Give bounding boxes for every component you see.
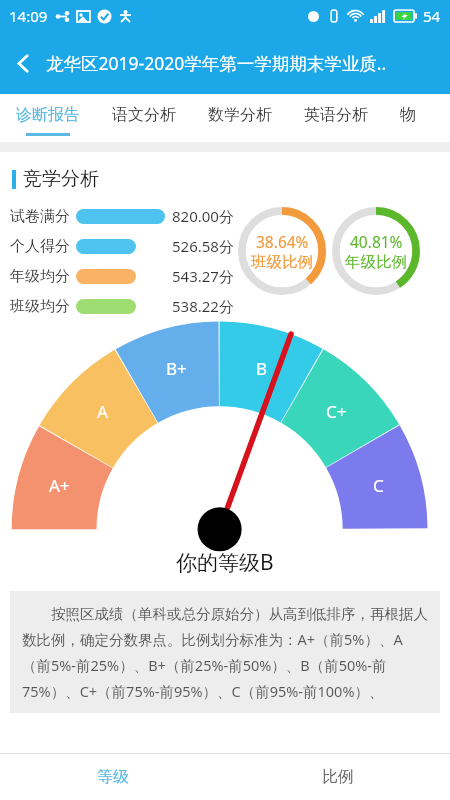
staticText: 英语分析 — [304, 105, 368, 125]
staticText: A — [97, 400, 108, 423]
staticText: 物 — [400, 105, 416, 125]
staticText: A+ — [49, 474, 70, 497]
staticText: 40.81% — [350, 231, 403, 252]
button[interactable]: 物 — [384, 94, 432, 142]
button[interactable]: 比例 — [225, 754, 450, 800]
staticText: 543.27分 — [172, 266, 234, 286]
staticText: 820.00分 — [172, 206, 234, 226]
button[interactable]: 等级 — [0, 754, 225, 800]
staticText: 竞学分析 — [23, 167, 99, 191]
staticText: C+ — [326, 400, 347, 423]
staticText: 按照区成绩（单科或总分原始分）从高到低排序，再根据人数比例，确定分数界点。比例划… — [22, 603, 428, 701]
staticText: 538.22分 — [172, 296, 234, 316]
button[interactable]: 英语分析 — [288, 94, 384, 142]
staticText: 试卷满分 — [10, 207, 70, 226]
staticText: 个人得分 — [10, 237, 70, 256]
staticText: 班级均分 — [10, 297, 70, 316]
staticText: 诊断报告 — [16, 105, 80, 125]
button[interactable]: Back — [0, 32, 46, 94]
button[interactable]: 诊断报告 — [0, 94, 96, 142]
staticText: 等级 — [97, 767, 129, 787]
staticText: 语文分析 — [112, 105, 176, 125]
staticText: 38.64% — [256, 231, 309, 252]
staticText: 54 — [423, 6, 441, 26]
staticText: 你的等级B — [176, 548, 274, 577]
staticText: 龙华区2019-2020学年第一学期期末学业质.. — [46, 51, 387, 75]
staticText: 数学分析 — [208, 105, 272, 125]
staticText: 年级均分 — [10, 267, 70, 286]
button[interactable]: 数学分析 — [192, 94, 288, 142]
staticText: 526.58分 — [172, 236, 234, 256]
staticText: C — [373, 474, 384, 497]
button[interactable]: 语文分析 — [96, 94, 192, 142]
staticText: 年级比例 — [345, 252, 407, 272]
staticText: 比例 — [322, 767, 354, 787]
staticText: B — [256, 357, 268, 380]
staticText: 班级比例 — [251, 252, 313, 272]
staticText: 14:09 — [9, 6, 48, 26]
staticText: B+ — [166, 357, 187, 380]
